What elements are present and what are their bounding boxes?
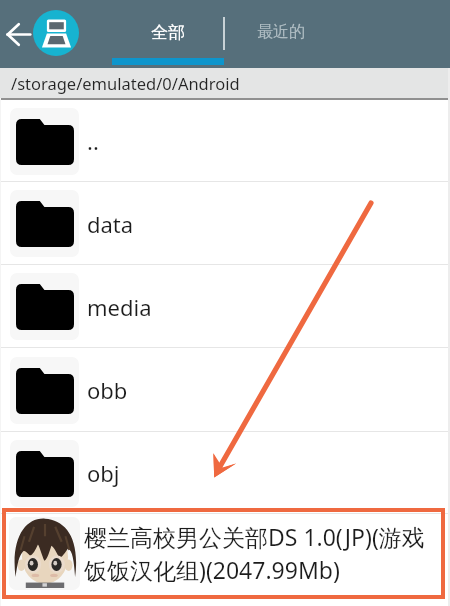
staticText: obj	[87, 458, 120, 488]
staticText: ..	[87, 126, 99, 156]
button[interactable]: /storage/emulated/0/Android	[0, 68, 450, 100]
staticText: media	[87, 292, 152, 322]
button[interactable]: media	[0, 265, 450, 348]
staticText: 全部	[151, 22, 185, 43]
staticText: /storage/emulated/0/Android	[11, 72, 240, 94]
staticText: obb	[87, 375, 128, 405]
button[interactable]: 最近的	[226, 0, 336, 64]
button[interactable]: obb	[0, 348, 450, 432]
staticText: 最近的	[257, 22, 305, 42]
button[interactable]: 全部	[112, 0, 224, 64]
staticText: data	[87, 209, 134, 239]
button[interactable]: ..	[0, 100, 450, 182]
staticText: 樱兰高校男公关部DS 1.0(JP)(游戏 饭饭汉化组)(2047.99Mb)	[84, 521, 425, 586]
button[interactable]: data	[0, 182, 450, 265]
button[interactable]: DraStic app icon	[33, 10, 79, 56]
button[interactable]: 樱兰高校男公关部DS 1.0(JP)(游戏 饭饭汉化组)(2047.99Mb)	[0, 508, 450, 598]
button[interactable]: Back	[0, 0, 36, 68]
button[interactable]: obj	[0, 432, 450, 514]
